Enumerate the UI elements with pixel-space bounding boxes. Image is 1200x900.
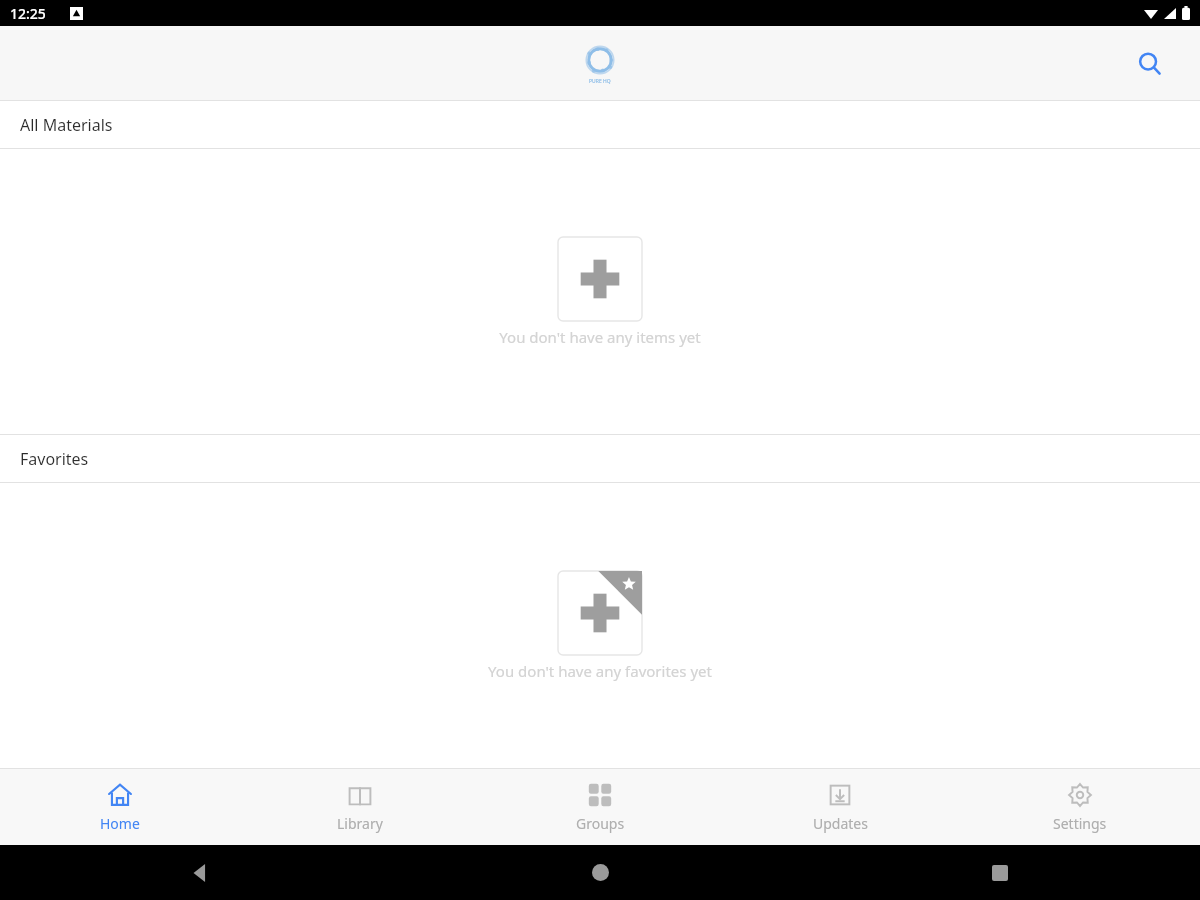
staticText: Favorites: [20, 448, 89, 470]
button[interactable]: Updates: [720, 769, 960, 845]
button[interactable]: All Materials: [0, 101, 1200, 148]
button[interactable]: Home: [0, 769, 240, 845]
staticText: PURE HQ: [589, 78, 611, 85]
button[interactable]: You don't have any items yet: [499, 237, 701, 347]
button[interactable]: Library: [240, 769, 480, 845]
button[interactable]: Home: [400, 845, 800, 900]
button[interactable]: Recent apps: [800, 845, 1200, 900]
staticText: Home: [100, 814, 140, 833]
staticText: All Materials: [20, 114, 113, 136]
staticText: Updates: [813, 814, 868, 833]
staticText: You don't have any favorites yet: [488, 661, 712, 681]
button[interactable]: Settings: [960, 769, 1200, 845]
button[interactable]: Back: [0, 845, 400, 900]
button[interactable]: Search: [1128, 42, 1172, 86]
button[interactable]: You don't have any favorites yet: [488, 571, 712, 681]
button[interactable]: Favorites: [0, 435, 1200, 482]
staticText: You don't have any items yet: [499, 327, 701, 347]
staticText: Settings: [1053, 814, 1107, 833]
button[interactable]: Groups: [480, 769, 720, 845]
staticText: Groups: [576, 814, 625, 833]
staticText: 12:25: [10, 4, 46, 23]
staticText: Library: [337, 814, 383, 833]
